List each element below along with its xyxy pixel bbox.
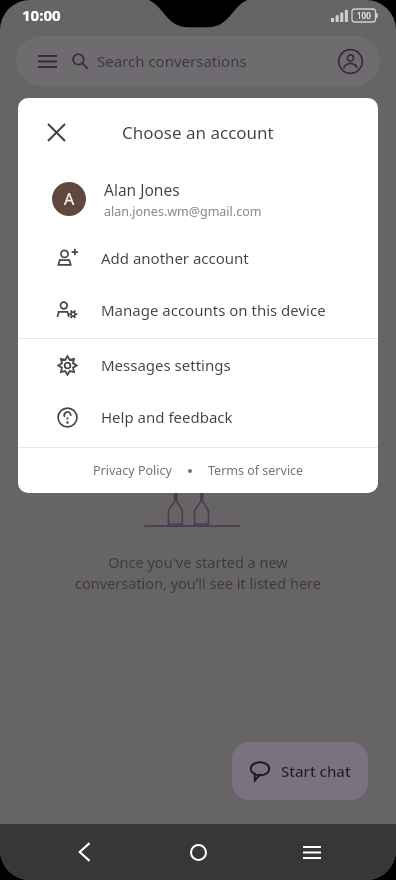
staticText: 100 bbox=[357, 10, 371, 21]
staticText: Once you've started a new conversation, … bbox=[75, 552, 321, 594]
button[interactable]: Start chat bbox=[232, 742, 368, 800]
staticText: Terms of service bbox=[208, 462, 304, 479]
button[interactable]: Help and feedback bbox=[18, 391, 378, 443]
button[interactable]: Privacy Policy bbox=[89, 458, 176, 483]
staticText: A bbox=[64, 188, 75, 210]
button[interactable]: A bbox=[18, 166, 378, 232]
staticText: alan.jones.wm@gmail.com bbox=[104, 203, 262, 220]
button[interactable]: Back bbox=[62, 830, 106, 874]
staticText: 10:00 bbox=[22, 5, 61, 25]
button[interactable]: Account bbox=[334, 45, 366, 77]
staticText: Privacy Policy bbox=[93, 462, 172, 479]
staticText: Start chat bbox=[281, 761, 351, 781]
button[interactable]: Open navigation menu bbox=[16, 36, 380, 86]
staticText: Messages settings bbox=[101, 355, 231, 375]
button[interactable]: Open navigation menu bbox=[32, 46, 62, 76]
button[interactable]: Terms of service bbox=[204, 458, 308, 483]
button[interactable]: Home bbox=[176, 830, 220, 874]
button[interactable]: Close bbox=[34, 110, 78, 154]
staticText: Search conversations bbox=[97, 51, 247, 71]
button[interactable]: Messages settings bbox=[18, 339, 378, 391]
button[interactable]: Manage accounts on this device bbox=[18, 284, 378, 336]
staticText: Alan Jones bbox=[104, 179, 180, 200]
button[interactable]: Add another account bbox=[18, 232, 378, 284]
staticText: Choose an account bbox=[122, 121, 274, 144]
staticText: Manage accounts on this device bbox=[101, 300, 326, 320]
staticText: Help and feedback bbox=[101, 407, 233, 427]
staticText: Add another account bbox=[101, 248, 249, 268]
button[interactable]: Recent apps bbox=[290, 830, 334, 874]
